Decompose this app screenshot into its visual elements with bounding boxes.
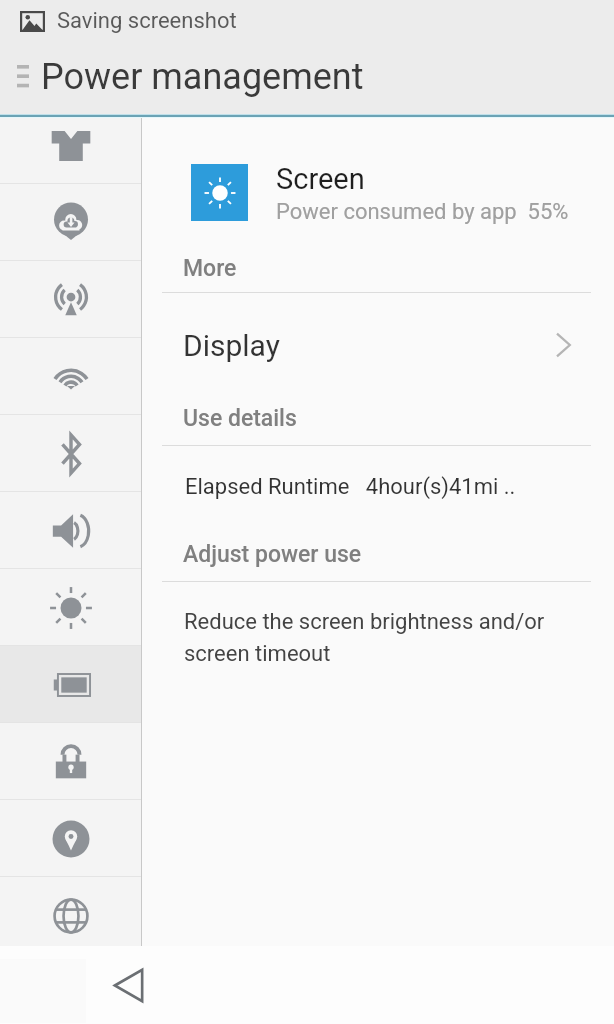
staticText: Saving screenshot: [57, 8, 237, 34]
staticText: Screen: [276, 162, 365, 196]
button[interactable]: Theme: [0, 118, 142, 184]
staticText: Reduce the screen brightness and/or scre…: [184, 609, 545, 667]
staticText: Elapsed Runtime 4hour(s)41mi ..: [185, 474, 516, 500]
staticText: Adjust power use: [183, 541, 362, 568]
button[interactable]: Back: [91, 946, 165, 1024]
button[interactable]: Security: [0, 723, 142, 800]
staticText: Use details: [183, 405, 297, 432]
staticText: Power management: [41, 56, 364, 98]
button[interactable]: Location: [0, 800, 142, 877]
button[interactable]: Menu: [0, 42, 40, 114]
staticText: Display: [183, 328, 280, 363]
staticText: More: [183, 255, 237, 282]
button[interactable]: Sound: [0, 492, 142, 569]
button[interactable]: Bluetooth: [0, 415, 142, 492]
button[interactable]: Elapsed Runtime 4hour(s)41mi ..: [142, 458, 614, 516]
button[interactable]: Power management: [0, 646, 142, 723]
button[interactable]: Display: [142, 314, 614, 376]
button[interactable]: Wi-Fi: [0, 338, 142, 415]
button[interactable]: Brightness: [0, 569, 142, 646]
button[interactable]: Network: [0, 877, 142, 946]
button[interactable]: Mobile network: [0, 261, 142, 338]
staticText: Power consumed by app 55%: [276, 199, 569, 225]
button[interactable]: Cloud backup: [0, 184, 142, 261]
